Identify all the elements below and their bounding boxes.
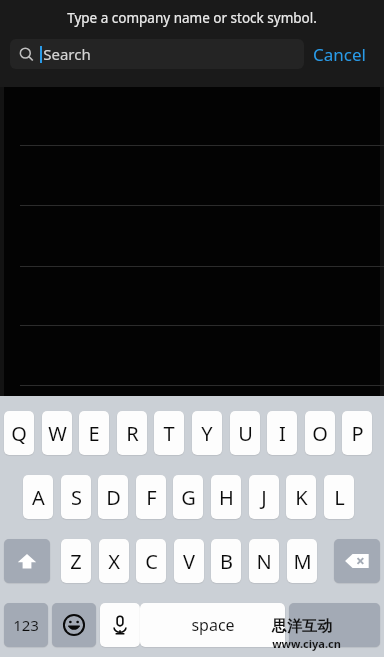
staticText: Y <box>201 420 213 447</box>
staticText: E <box>88 420 100 447</box>
button[interactable]: Shift <box>4 539 50 583</box>
button[interactable]: T <box>154 411 184 455</box>
staticText: J <box>261 484 267 511</box>
staticText: A <box>32 484 45 511</box>
button[interactable]: B <box>211 539 241 583</box>
staticText: T <box>163 420 175 447</box>
button[interactable]: M <box>287 539 317 583</box>
staticText: X <box>108 548 120 575</box>
staticText: F <box>146 484 157 511</box>
staticText: I <box>279 420 286 447</box>
button[interactable]: Search <box>10 39 304 69</box>
staticText: Cancel <box>313 43 366 66</box>
button[interactable]: I <box>267 411 297 455</box>
button[interactable]: P <box>342 411 372 455</box>
staticText: space <box>191 614 235 636</box>
button[interactable]: N <box>249 539 279 583</box>
button[interactable]: G <box>173 475 203 519</box>
button[interactable]: 123 <box>4 603 48 647</box>
button[interactable]: H <box>211 475 241 519</box>
button[interactable]: X <box>99 539 129 583</box>
staticText: C <box>145 548 158 575</box>
button[interactable]: U <box>230 411 260 455</box>
button[interactable]: Cancel <box>313 39 366 69</box>
staticText: Search <box>43 44 91 64</box>
staticText: 思洋互动 <box>272 617 332 636</box>
staticText: H <box>219 484 234 511</box>
button[interactable]: E <box>79 411 109 455</box>
staticText: Type a company name or stock symbol. <box>67 9 317 27</box>
staticText: D <box>106 484 121 511</box>
button[interactable]: D <box>98 475 128 519</box>
button[interactable]: C <box>136 539 166 583</box>
button[interactable]: Delete <box>334 539 380 583</box>
staticText: V <box>183 548 195 575</box>
button[interactable]: Return <box>289 603 380 647</box>
staticText: N <box>256 548 272 575</box>
button[interactable]: V <box>174 539 204 583</box>
staticText: G <box>181 484 196 511</box>
button[interactable]: Q <box>4 411 34 455</box>
staticText: S <box>71 484 82 511</box>
button[interactable]: S <box>61 475 91 519</box>
button[interactable]: R <box>117 411 147 455</box>
button[interactable]: A <box>23 475 53 519</box>
staticText: www.ciya.cn <box>272 636 341 651</box>
staticText: Z <box>70 548 82 575</box>
button[interactable]: Z <box>61 539 91 583</box>
staticText: R <box>126 420 139 447</box>
button[interactable]: O <box>305 411 335 455</box>
staticText: U <box>238 420 253 447</box>
button[interactable]: Dictation <box>100 603 140 647</box>
button[interactable]: W <box>42 411 72 455</box>
staticText: L <box>334 484 345 511</box>
button[interactable]: space <box>140 603 285 647</box>
staticText: Q <box>11 420 27 447</box>
button[interactable]: Y <box>192 411 222 455</box>
staticText: O <box>312 420 328 447</box>
button[interactable]: F <box>136 475 166 519</box>
button[interactable]: K <box>286 475 316 519</box>
button[interactable]: Emoji <box>52 603 96 647</box>
staticText: M <box>293 548 312 575</box>
staticText: P <box>351 420 364 447</box>
staticText: K <box>295 484 308 511</box>
staticText: W <box>48 420 67 447</box>
staticText: 123 <box>13 615 39 635</box>
button[interactable]: J <box>249 475 279 519</box>
button[interactable]: L <box>324 475 354 519</box>
staticText: B <box>220 548 233 575</box>
